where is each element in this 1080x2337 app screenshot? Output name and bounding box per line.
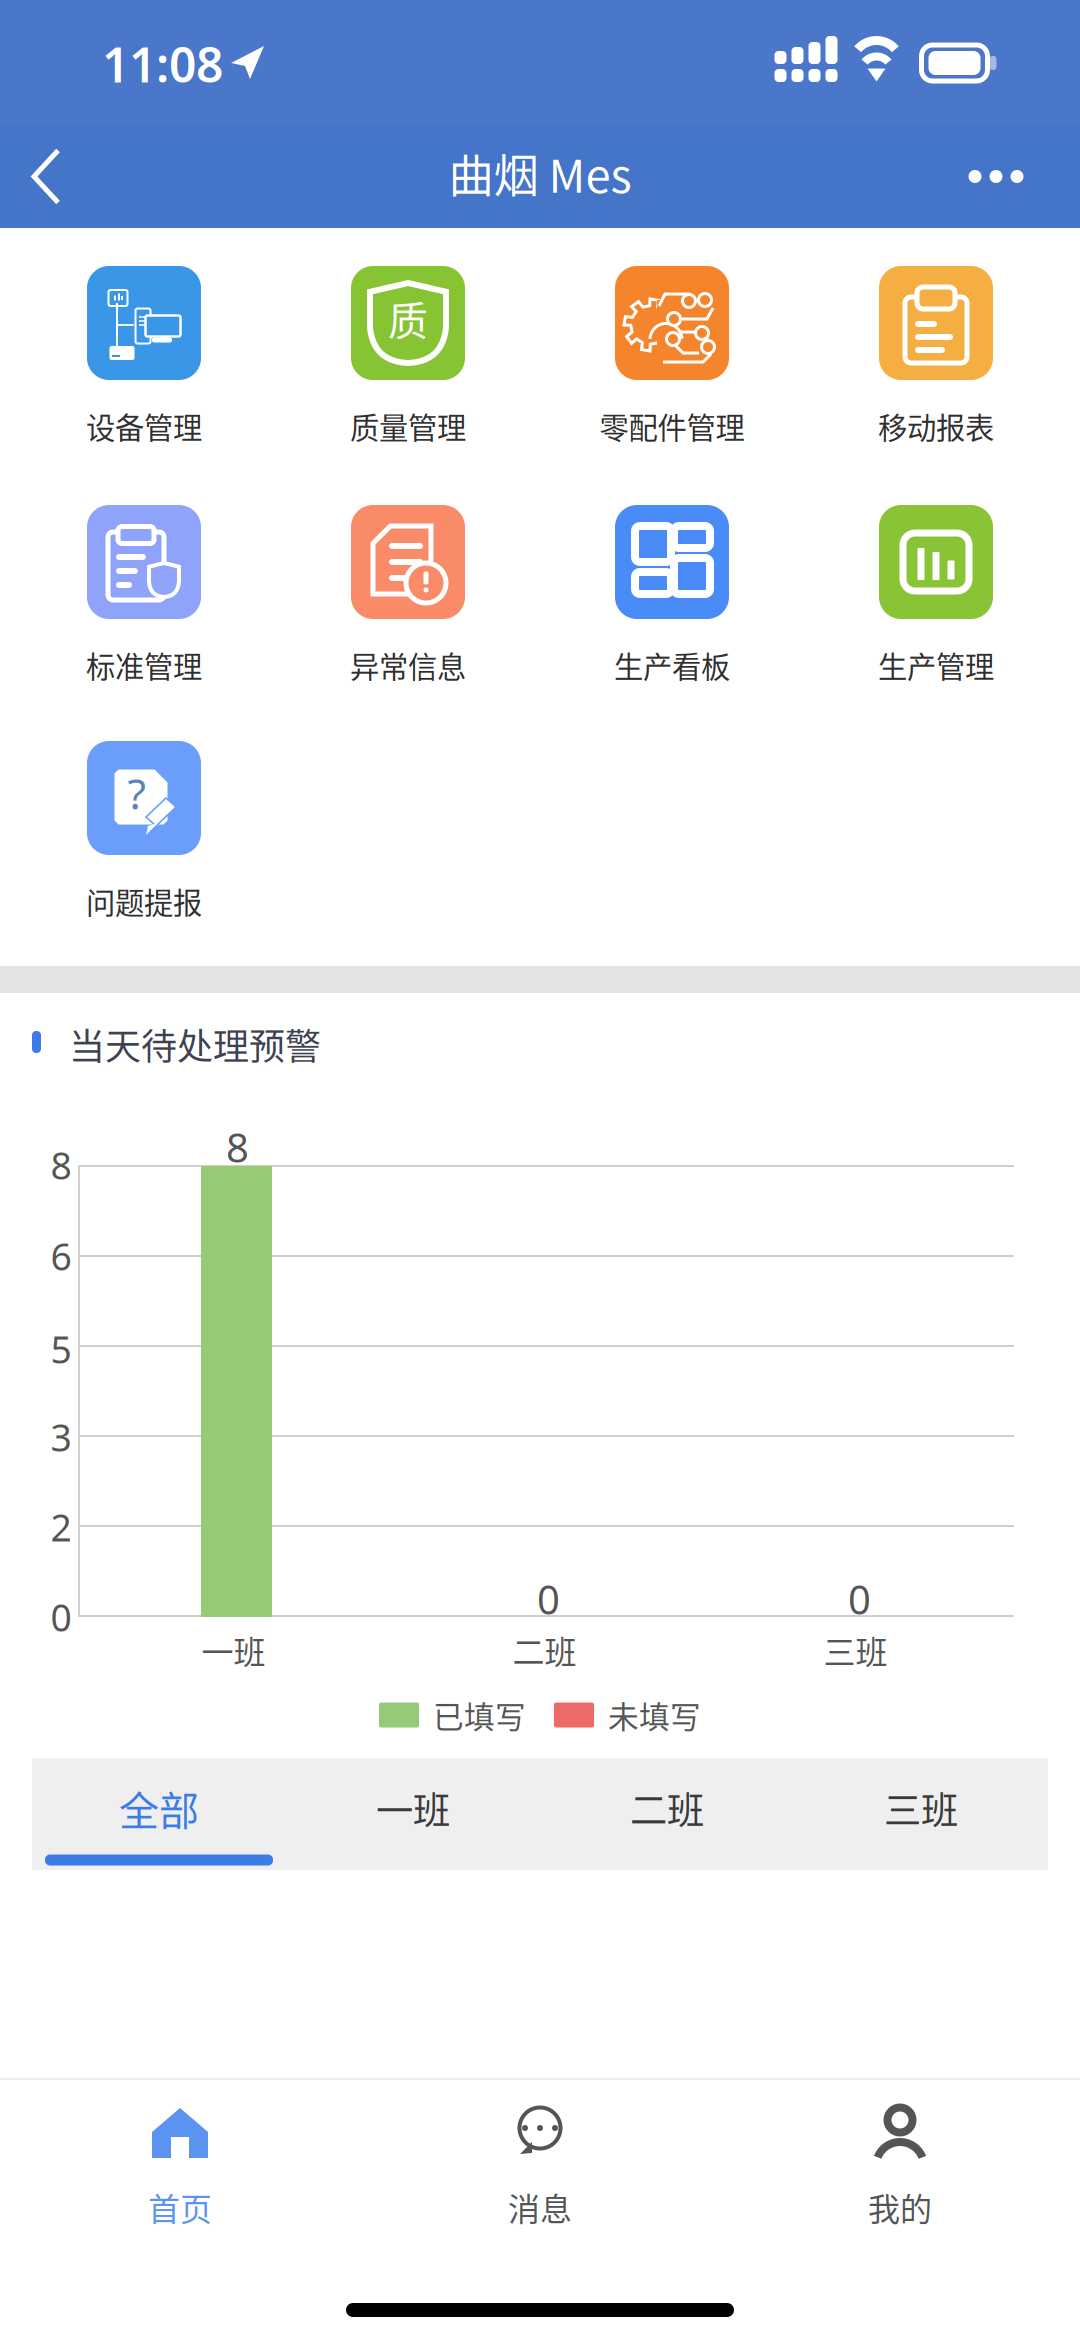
- button[interactable]: 标准管理: [12, 505, 276, 695]
- staticText: 移动报表: [878, 405, 994, 447]
- staticText: 三班: [884, 1781, 958, 1835]
- button[interactable]: More: [952, 125, 1072, 228]
- staticText: 已填写: [433, 1693, 526, 1737]
- button[interactable]: 异常信息: [276, 505, 540, 695]
- staticText: 6: [50, 1231, 71, 1281]
- staticText: 全部: [119, 1779, 199, 1837]
- staticText: 11:08: [102, 32, 223, 96]
- staticText: 生产管理: [878, 644, 994, 686]
- staticText: 首页: [148, 2184, 212, 2230]
- staticText: 质: [388, 289, 428, 347]
- staticText: 设备管理: [86, 405, 202, 447]
- button[interactable]: 三班: [794, 1758, 1048, 1870]
- button[interactable]: 质: [276, 266, 540, 456]
- button[interactable]: ?: [12, 741, 276, 931]
- staticText: 二班: [512, 1627, 576, 1673]
- staticText: 0: [848, 1572, 871, 1625]
- staticText: 标准管理: [86, 644, 202, 686]
- button[interactable]: 全部: [32, 1758, 286, 1870]
- button[interactable]: 消息: [360, 2080, 720, 2260]
- button[interactable]: 生产管理: [804, 505, 1068, 695]
- staticText: 0: [50, 1592, 71, 1642]
- staticText: 当天待处理预警: [69, 1018, 321, 1070]
- button[interactable]: 我的: [720, 2080, 1080, 2260]
- button[interactable]: 零配件管理: [540, 266, 804, 456]
- staticText: ?: [127, 765, 146, 821]
- staticText: 2: [50, 1502, 71, 1552]
- staticText: 一班: [201, 1627, 265, 1673]
- staticText: 一班: [376, 1781, 450, 1835]
- staticText: 消息: [508, 2184, 572, 2230]
- button[interactable]: Back: [0, 125, 92, 228]
- staticText: 3: [50, 1412, 71, 1462]
- staticText: 异常信息: [350, 644, 466, 686]
- button[interactable]: 设备管理: [12, 266, 276, 456]
- button[interactable]: 生产看板: [540, 505, 804, 695]
- staticText: 8: [226, 1120, 249, 1173]
- staticText: 未填写: [608, 1693, 701, 1737]
- staticText: 0: [537, 1572, 560, 1625]
- staticText: 问题提报: [86, 880, 202, 922]
- staticText: 零配件管理: [599, 405, 744, 447]
- button[interactable]: 移动报表: [804, 266, 1068, 456]
- button[interactable]: 一班: [286, 1758, 540, 1870]
- staticText: 生产看板: [614, 644, 730, 686]
- staticText: 曲烟 Mes: [448, 140, 631, 206]
- staticText: 我的: [868, 2184, 932, 2230]
- button[interactable]: 首页: [0, 2080, 360, 2260]
- staticText: 三班: [823, 1627, 887, 1673]
- staticText: 二班: [630, 1781, 704, 1835]
- staticText: 5: [50, 1324, 71, 1374]
- button[interactable]: 二班: [540, 1758, 794, 1870]
- staticText: 8: [50, 1140, 71, 1190]
- staticText: 质量管理: [350, 405, 466, 447]
